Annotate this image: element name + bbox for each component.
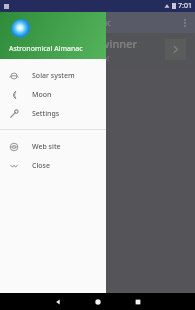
staticText: Moon [32, 90, 52, 100]
staticText: You are the winner. Way to go! [10, 54, 110, 64]
button[interactable]: Home [78, 293, 118, 310]
staticText: Close [32, 161, 51, 171]
button[interactable]: Close [0, 156, 106, 175]
button[interactable]: Web site [0, 137, 106, 156]
button[interactable]: Next [165, 39, 186, 60]
staticText: Settings [32, 109, 60, 119]
button[interactable]: Settings [0, 104, 106, 123]
staticText: Astronomical Almanac [9, 44, 83, 54]
staticText: Web site [32, 142, 61, 152]
staticText: Congratulations, winner [10, 36, 138, 51]
button[interactable]: Moon [0, 85, 106, 104]
staticText: Solar system [32, 71, 75, 81]
button[interactable]: More options [176, 14, 193, 31]
button[interactable]: Back [38, 293, 78, 310]
button[interactable]: Recent apps [118, 293, 158, 310]
staticText: Astronomical Almanac [27, 17, 112, 28]
staticText: 7:01 [178, 1, 192, 11]
button[interactable]: Back [3, 14, 20, 31]
button[interactable]: Solar system [0, 66, 106, 85]
